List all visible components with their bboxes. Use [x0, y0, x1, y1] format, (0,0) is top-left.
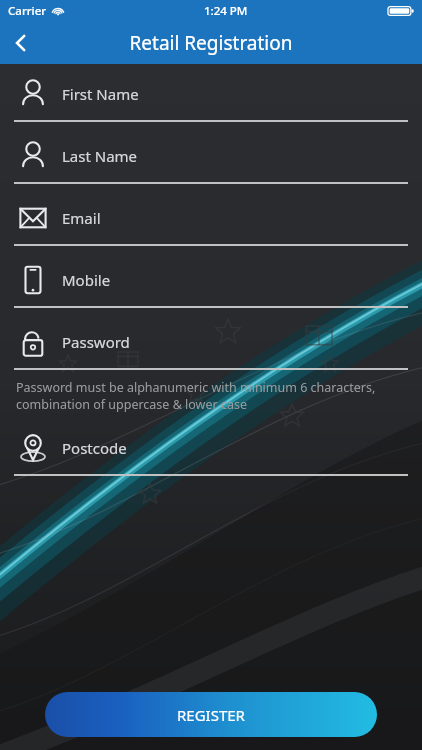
button[interactable]: Email — [0, 192, 422, 244]
staticText: REGISTER — [177, 705, 245, 725]
button[interactable]: First Name — [0, 68, 422, 120]
button[interactable]: Postcode — [0, 422, 422, 474]
staticText: Last Name — [62, 146, 138, 166]
button[interactable]: Back — [0, 22, 42, 64]
button[interactable]: Mobile — [0, 254, 422, 306]
staticText: Mobile — [62, 270, 111, 290]
staticText: 1:24 PM — [204, 3, 248, 19]
staticText: First Name — [62, 84, 139, 104]
button[interactable]: Last Name — [0, 130, 422, 182]
staticText: Postcode — [62, 438, 127, 458]
button[interactable]: REGISTER — [45, 692, 377, 737]
button[interactable]: Password — [0, 316, 422, 368]
staticText: Retail Registration — [129, 30, 293, 56]
staticText: Password must be alphanumeric with minim… — [16, 379, 376, 413]
staticText: Email — [62, 208, 101, 228]
staticText: Carrier — [8, 3, 47, 19]
staticText: Password — [62, 332, 130, 352]
